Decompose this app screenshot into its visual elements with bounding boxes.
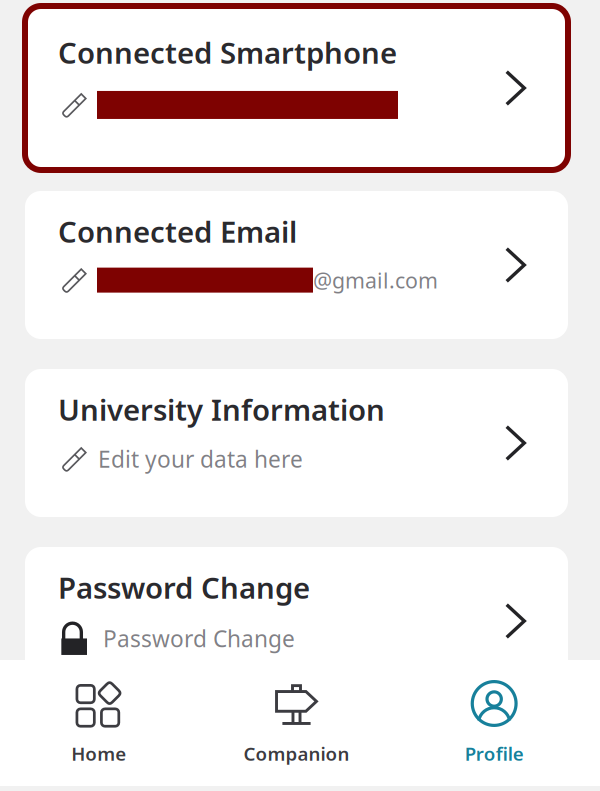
- staticText: Edit your data here: [98, 444, 303, 474]
- staticText: Connected Smartphone: [58, 33, 397, 72]
- staticText: Connected Email: [58, 212, 297, 251]
- button[interactable]: Companion: [198, 680, 395, 766]
- staticText: @gmail.com: [313, 266, 438, 294]
- button[interactable]: Connected Email: [25, 191, 568, 339]
- staticText: Home: [71, 741, 126, 766]
- button[interactable]: Profile: [395, 680, 593, 766]
- staticText: Password Change: [103, 623, 295, 653]
- staticText: Profile: [465, 741, 524, 766]
- staticText: University Information: [58, 390, 385, 429]
- button[interactable]: Connected Smartphone: [25, 6, 568, 170]
- staticText: Password Change: [58, 568, 310, 607]
- button[interactable]: University Information: [25, 369, 568, 517]
- button[interactable]: Password Change: [25, 547, 568, 695]
- staticText: Companion: [243, 741, 349, 766]
- button[interactable]: Home: [0, 680, 198, 766]
